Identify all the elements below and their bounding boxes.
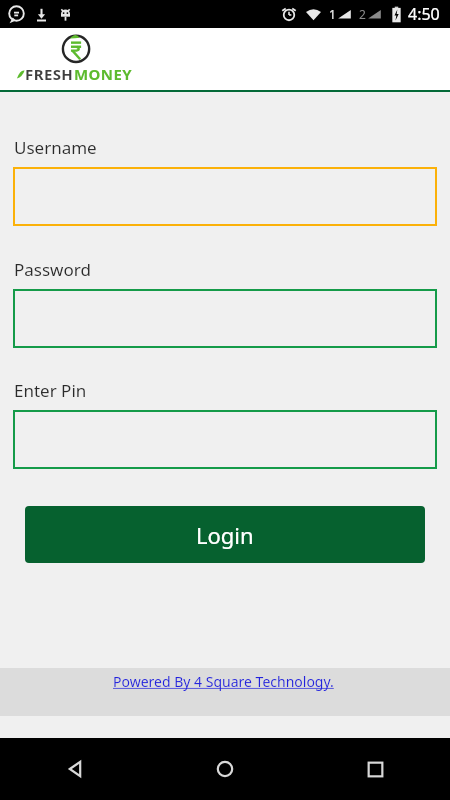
button[interactable] [13,167,437,226]
button[interactable]: Back [43,738,107,800]
staticText: 4:50 [408,3,440,25]
staticText: 1 [329,6,336,22]
staticText: Password [14,258,91,281]
staticText: Enter Pin [14,379,87,402]
button[interactable] [13,410,437,469]
button[interactable] [13,289,437,348]
staticText: MONEY [74,64,132,84]
staticText: Username [14,136,97,159]
button[interactable]: Recent apps [343,738,407,800]
staticText: Login [196,520,254,550]
button[interactable]: Login [25,506,425,563]
button[interactable]: Home [193,738,257,800]
button[interactable]: Powered By 4 Square Technology. [0,668,450,716]
staticText: 2 [359,6,366,22]
staticText: Powered By 4 Square Technology. [113,672,338,691]
staticText: FRESH [25,64,74,84]
